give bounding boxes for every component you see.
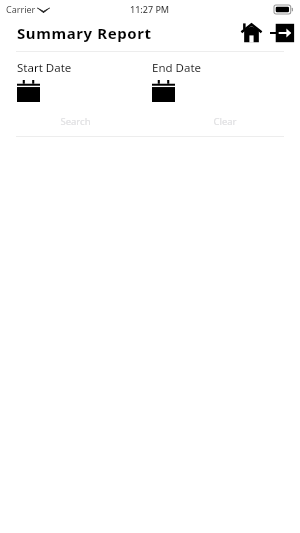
button[interactable]: Start Date: [17, 60, 80, 102]
staticText: Start Date: [17, 60, 72, 76]
staticText: Clear: [213, 115, 237, 128]
staticText: Carrier: [6, 3, 36, 15]
button[interactable]: Home: [238, 20, 264, 46]
button[interactable]: Clear: [150, 115, 300, 128]
staticText: 11:27 PM: [130, 3, 170, 15]
button[interactable]: Search: [0, 115, 150, 128]
staticText: Search: [60, 115, 91, 128]
staticText: Summary Report: [17, 23, 152, 43]
staticText: End Date: [152, 60, 202, 76]
button[interactable]: End Date: [152, 60, 210, 102]
button[interactable]: Logout: [268, 20, 294, 46]
